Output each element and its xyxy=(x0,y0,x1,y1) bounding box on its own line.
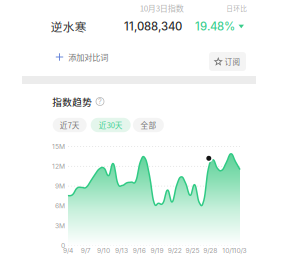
button[interactable]: 添加对比词 xyxy=(53,47,111,67)
staticText: 逆水寒 xyxy=(51,18,87,35)
staticText: 指数趋势 xyxy=(52,94,92,108)
staticText: 9/16 xyxy=(133,246,146,255)
staticText: 9/10 xyxy=(97,246,110,255)
staticText: 10月3日指数 xyxy=(140,2,184,14)
staticText: 9M xyxy=(55,182,65,190)
staticText: 9/7 xyxy=(81,246,91,255)
staticText: 9/22 xyxy=(168,246,182,255)
staticText: 9/13 xyxy=(115,246,128,255)
staticText: 订阅 xyxy=(224,56,240,67)
staticText: 6M xyxy=(55,202,65,210)
staticText: 0 xyxy=(61,241,65,250)
staticText: 9/4 xyxy=(63,246,73,255)
staticText: 9/25 xyxy=(186,246,200,255)
staticText: 添加对比词 xyxy=(68,51,108,63)
staticText: 11,088,340 xyxy=(124,20,182,33)
button[interactable]: 全部 xyxy=(133,118,164,132)
button[interactable]: 近30天 xyxy=(91,118,131,132)
staticText: 10/3 xyxy=(233,246,246,255)
staticText: 近30天 xyxy=(99,119,123,130)
staticText: 12M xyxy=(52,162,65,170)
staticText: 9/28 xyxy=(203,246,217,255)
staticText: 19.48% xyxy=(195,20,235,33)
staticText: 近7天 xyxy=(60,119,80,130)
button[interactable]: 订阅 xyxy=(209,52,246,71)
staticText: 15M xyxy=(52,142,65,151)
staticText: 全部 xyxy=(140,119,156,130)
staticText: 10/1 xyxy=(222,246,234,255)
staticText: 日环比 xyxy=(226,3,247,13)
button[interactable]: 近7天 xyxy=(53,118,87,132)
staticText: 9/19 xyxy=(150,246,163,255)
staticText: 3M xyxy=(55,222,65,230)
staticText: ? xyxy=(98,97,102,106)
